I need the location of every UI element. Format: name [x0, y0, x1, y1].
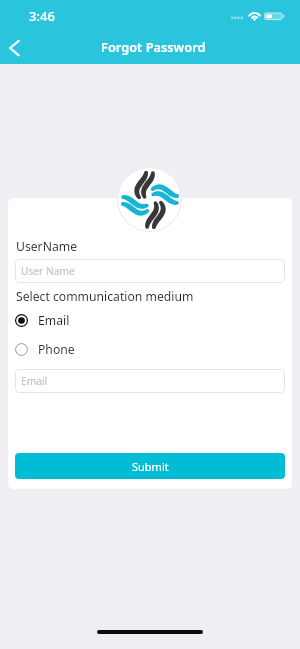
- staticText: Select communication medium: [16, 288, 194, 305]
- staticText: 3:46: [29, 7, 55, 25]
- staticText: Submit: [132, 459, 169, 474]
- staticText: User Name: [21, 264, 75, 278]
- button[interactable]: Back: [2, 34, 30, 62]
- button[interactable]: Email: [14, 309, 124, 331]
- staticText: Email: [21, 374, 48, 388]
- button[interactable]: Email: [15, 369, 285, 393]
- button[interactable]: Submit: [15, 453, 285, 479]
- button[interactable]: User Name: [15, 259, 285, 283]
- staticText: Forgot Password: [101, 38, 206, 55]
- staticText: UserName: [16, 238, 78, 255]
- staticText: Phone: [38, 341, 75, 358]
- staticText: Email: [38, 312, 70, 329]
- button[interactable]: Phone: [14, 338, 124, 360]
